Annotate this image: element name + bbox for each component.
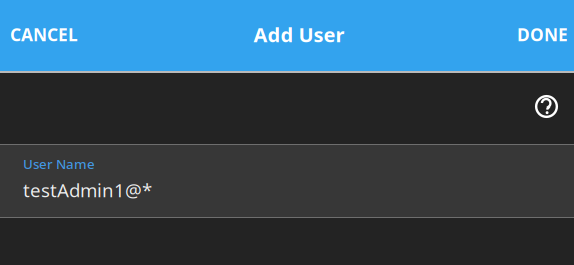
staticText: DONE <box>517 23 568 46</box>
staticText: testAdmin1@* <box>23 178 152 202</box>
staticText: CANCEL <box>10 23 78 46</box>
button[interactable]: User Name <box>0 145 574 217</box>
staticText: User Name <box>23 155 95 173</box>
button[interactable]: Help <box>519 85 574 132</box>
button[interactable]: CANCEL <box>0 12 89 59</box>
staticText: Add User <box>253 21 344 48</box>
button[interactable]: DONE <box>508 12 574 59</box>
